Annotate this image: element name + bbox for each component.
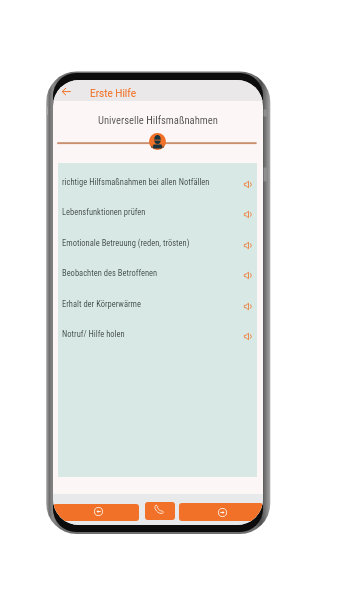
button[interactable]: Play audio <box>241 329 255 344</box>
button[interactable]: Beobachten des Betroffenen <box>58 258 257 288</box>
button[interactable]: Notruf/ Hilfe holen <box>58 319 257 349</box>
button[interactable]: Emergency call <box>145 502 175 520</box>
staticText: richtige Hilfsmaßnahmen bei allen Notfäl… <box>62 177 210 187</box>
button[interactable]: Next page <box>179 503 263 521</box>
staticText: Beobachten des Betroffenen <box>62 268 158 278</box>
staticText: Erste Hilfe <box>90 88 136 100</box>
button[interactable]: Play audio <box>241 268 255 283</box>
button[interactable]: Play audio <box>241 238 255 253</box>
staticText: Notruf/ Hilfe holen <box>62 329 125 339</box>
button[interactable]: Play audio <box>241 177 255 192</box>
staticText: Universelle Hilfsmaßnahmen <box>98 114 218 126</box>
button[interactable]: Lebensfunktionen prüfen <box>58 197 257 227</box>
button[interactable]: richtige Hilfsmaßnahmen bei allen Notfäl… <box>58 167 257 197</box>
staticText: Erhalt der Körperwärme <box>62 299 141 309</box>
button[interactable]: Back <box>57 82 75 99</box>
staticText: Emotionale Betreuung (reden, trösten) <box>62 238 190 248</box>
button[interactable]: Erhalt der Körperwärme <box>58 289 257 319</box>
button[interactable]: Play audio <box>241 207 255 222</box>
button[interactable]: Play audio <box>241 299 255 314</box>
button[interactable]: Previous page <box>53 504 139 521</box>
button[interactable]: Emotionale Betreuung (reden, trösten) <box>58 228 257 258</box>
staticText: Lebensfunktionen prüfen <box>62 207 146 217</box>
button[interactable]: First aid helper <box>149 133 166 150</box>
